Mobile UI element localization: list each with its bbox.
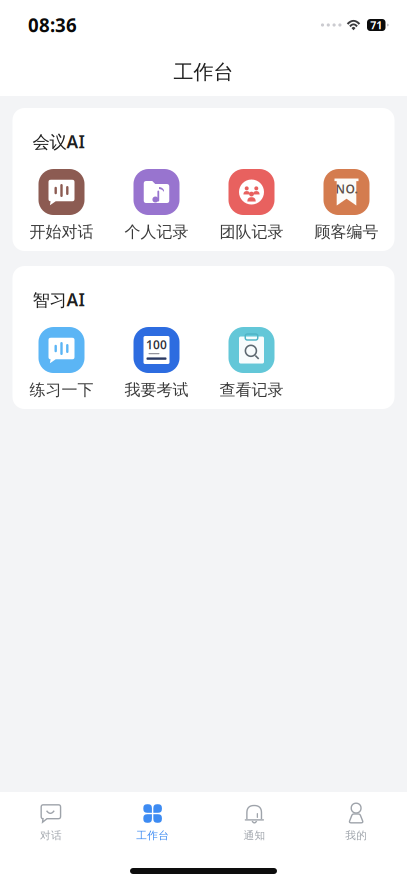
staticText: 100 — [146, 337, 167, 352]
staticText: NO. — [335, 181, 357, 197]
button[interactable]: 查看记录 — [204, 327, 299, 400]
staticText: 71 — [370, 18, 382, 32]
staticText: 我的 — [345, 829, 367, 842]
staticText: 08:36 — [28, 13, 77, 37]
button[interactable]: 我的 — [305, 804, 407, 842]
staticText: 智习AI — [32, 288, 84, 311]
staticText: 对话 — [40, 829, 62, 842]
staticText: 顾客编号 — [314, 222, 378, 242]
staticText: 工作台 — [173, 60, 233, 84]
staticText: 开始对话 — [29, 222, 93, 242]
button[interactable]: 团队记录 — [204, 169, 299, 242]
button[interactable]: NO. — [299, 169, 394, 242]
button[interactable]: 开始对话 — [14, 169, 109, 242]
staticText: 查看记录 — [219, 380, 283, 400]
button[interactable]: 练习一下 — [14, 327, 109, 400]
button[interactable]: 个人记录 — [109, 169, 204, 242]
staticText: 我要考试 — [124, 380, 188, 400]
staticText: 会议AI — [32, 130, 84, 153]
staticText: 练习一下 — [29, 380, 93, 400]
button[interactable]: 工作台 — [102, 804, 204, 842]
staticText: 团队记录 — [219, 222, 283, 242]
button[interactable]: 100 — [109, 327, 204, 400]
button[interactable]: 通知 — [203, 804, 305, 842]
staticText: 个人记录 — [124, 222, 188, 242]
button[interactable]: 对话 — [0, 804, 102, 842]
staticText: 通知 — [243, 829, 265, 842]
staticText: 工作台 — [136, 829, 169, 842]
